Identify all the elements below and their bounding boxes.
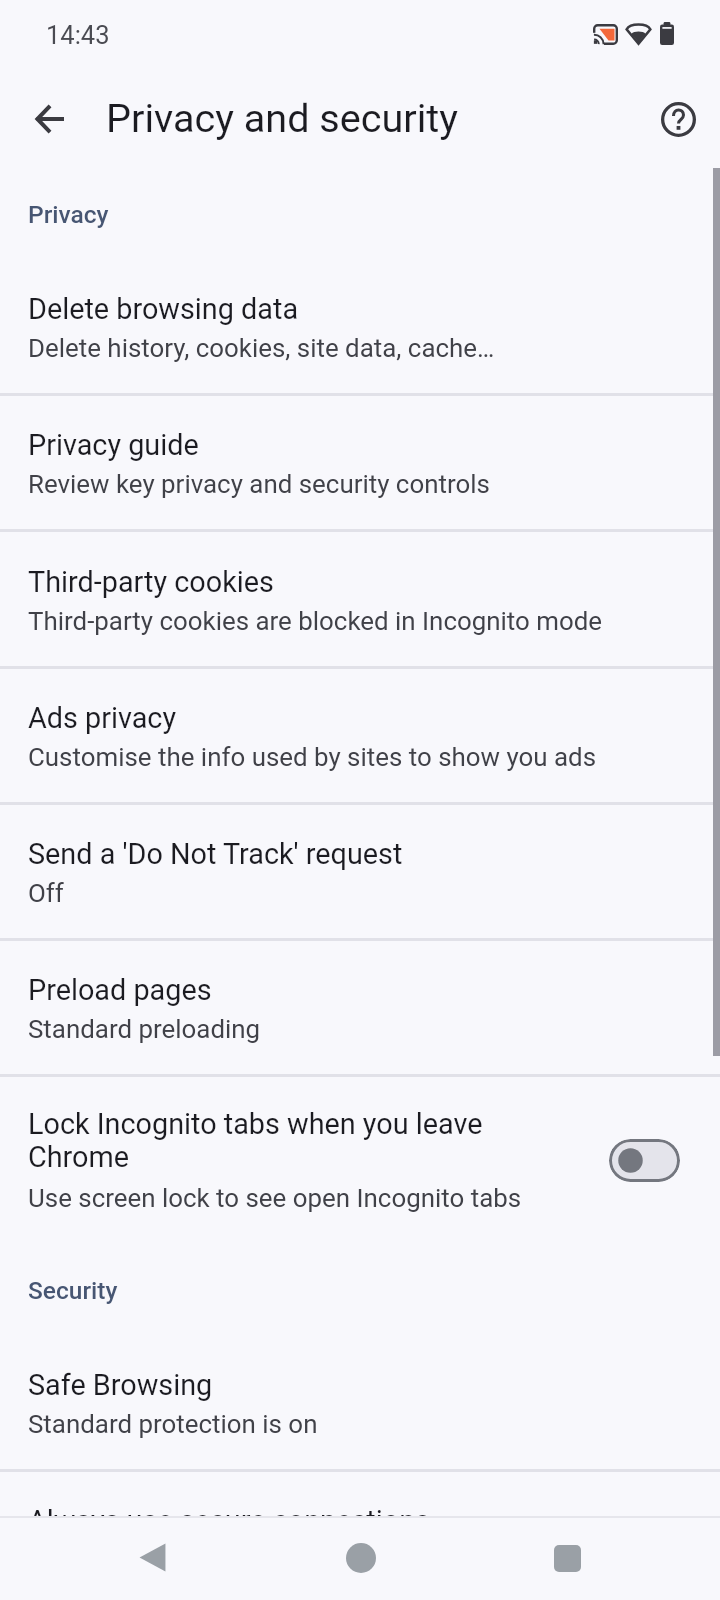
staticText: Review key privacy and security controls: [28, 469, 490, 499]
button[interactable]: Navigate up: [17, 87, 81, 151]
staticText: Use screen lock to see open Incognito ta…: [28, 1183, 522, 1213]
button[interactable]: Third-party cookies: [0, 533, 720, 669]
staticText: Delete browsing data: [28, 292, 299, 326]
button[interactable]: Help and feedback: [646, 87, 710, 151]
button[interactable]: Ads privacy: [0, 669, 720, 805]
button[interactable]: Preload pages: [0, 941, 720, 1077]
button[interactable]: Lock Incognito tabs, off: [609, 1139, 680, 1182]
staticText: Send a 'Do Not Track' request: [28, 837, 403, 871]
staticText: Standard preloading: [28, 1014, 261, 1044]
staticText: Privacy and security: [106, 95, 458, 141]
staticText: Lock Incognito tabs when you leave Chrom…: [28, 1107, 498, 1174]
staticText: Standard protection is on: [28, 1409, 318, 1439]
staticText: Privacy: [28, 200, 109, 229]
staticText: Always use secure connections: [28, 1504, 430, 1516]
button[interactable]: Lock Incognito tabs when you leave Chrom…: [0, 1077, 720, 1248]
button[interactable]: Always use secure connections: [0, 1472, 720, 1516]
staticText: Off: [28, 878, 64, 908]
button[interactable]: Delete browsing data: [0, 260, 720, 396]
button[interactable]: Safe Browsing: [0, 1336, 720, 1472]
staticText: Ads privacy: [28, 701, 177, 735]
staticText: Privacy guide: [28, 428, 199, 462]
staticText: Third-party cookies: [28, 565, 274, 599]
staticText: Preload pages: [28, 973, 212, 1007]
button[interactable]: Home: [321, 1518, 401, 1598]
staticText: Third-party cookies are blocked in Incog…: [28, 606, 603, 636]
button[interactable]: Privacy guide: [0, 396, 720, 532]
button[interactable]: Back: [112, 1517, 192, 1597]
staticText: Customise the info used by sites to show…: [28, 742, 596, 772]
staticText: Delete history, cookies, site data, cach…: [28, 333, 495, 363]
button[interactable]: Recent apps: [527, 1518, 607, 1598]
staticText: Security: [28, 1276, 118, 1305]
staticText: Safe Browsing: [28, 1368, 213, 1402]
staticText: 14:43: [46, 20, 110, 50]
button[interactable]: Send a 'Do Not Track' request: [0, 805, 720, 941]
